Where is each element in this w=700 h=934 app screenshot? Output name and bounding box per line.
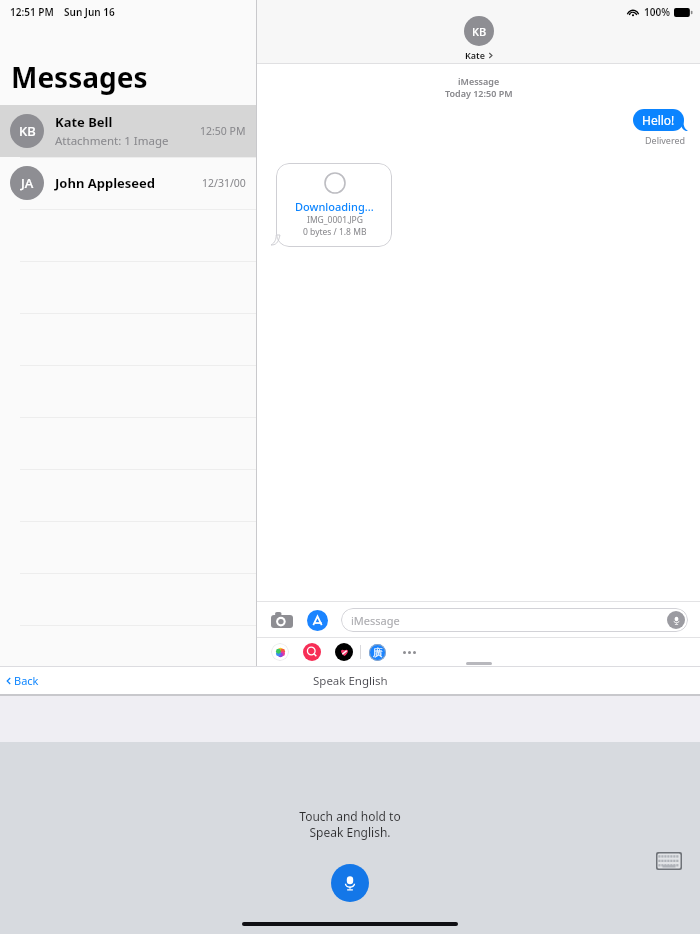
staticText: JA xyxy=(21,174,34,192)
staticText: Kate Bell xyxy=(55,113,113,131)
button[interactable]: Hide keyboard xyxy=(656,852,682,870)
staticText: 廣 xyxy=(373,646,383,659)
button[interactable]: iMessage xyxy=(341,608,688,632)
staticText: Attachment: 1 Image xyxy=(55,133,169,149)
staticText: KB xyxy=(19,122,36,140)
button[interactable]: Store xyxy=(303,643,321,661)
button[interactable]: Downloading... xyxy=(276,163,392,247)
staticText: Back xyxy=(14,673,39,688)
button[interactable]: Photos xyxy=(271,643,289,661)
staticText: Sun Jun 16 xyxy=(64,5,115,19)
staticText: KB xyxy=(472,24,487,39)
button[interactable]: Chinese app xyxy=(368,643,386,661)
staticText: iMessage xyxy=(458,75,500,87)
staticText: 100% xyxy=(644,5,670,19)
staticText: IMG_0001.JPG xyxy=(307,214,363,226)
button[interactable]: Hello! xyxy=(633,109,688,131)
staticText: 0 bytes / 1.8 MB xyxy=(303,226,367,238)
button[interactable]: KB xyxy=(0,105,256,157)
button[interactable]: KB xyxy=(464,16,494,61)
staticText: Hello! xyxy=(642,112,675,128)
button[interactable]: JA xyxy=(0,157,256,209)
staticText: Downloading... xyxy=(295,199,374,214)
button[interactable]: Dictate xyxy=(331,864,369,902)
staticText: Delivered xyxy=(645,134,686,146)
button[interactable]: App Store xyxy=(305,608,329,632)
staticText: 12:50 PM xyxy=(200,124,246,138)
button[interactable]: More apps xyxy=(400,643,418,661)
staticText: 12/31/00 xyxy=(202,176,246,190)
button[interactable]: Dictate xyxy=(667,611,685,629)
staticText: Speak English xyxy=(313,673,388,689)
staticText: Messages xyxy=(11,58,148,96)
button[interactable]: Back xyxy=(6,673,39,688)
staticText: John Appleseed xyxy=(55,174,156,192)
staticText: Kate xyxy=(465,49,486,61)
staticText: Today 12:50 PM xyxy=(445,87,513,99)
button[interactable]: Digital Touch xyxy=(335,643,353,661)
staticText: Speak English. xyxy=(309,824,391,840)
staticText: iMessage xyxy=(351,613,400,628)
staticText: Touch and hold to xyxy=(299,808,401,824)
button[interactable]: Camera xyxy=(269,607,295,633)
staticText: 12:51 PM xyxy=(10,5,54,19)
